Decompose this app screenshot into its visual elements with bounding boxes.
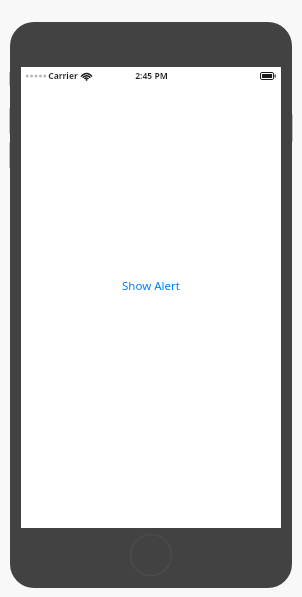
staticText: Carrier bbox=[48, 70, 78, 82]
staticText: 2:45 PM bbox=[135, 70, 168, 82]
button[interactable]: Show Alert bbox=[112, 272, 190, 300]
staticText: Show Alert bbox=[122, 278, 180, 294]
